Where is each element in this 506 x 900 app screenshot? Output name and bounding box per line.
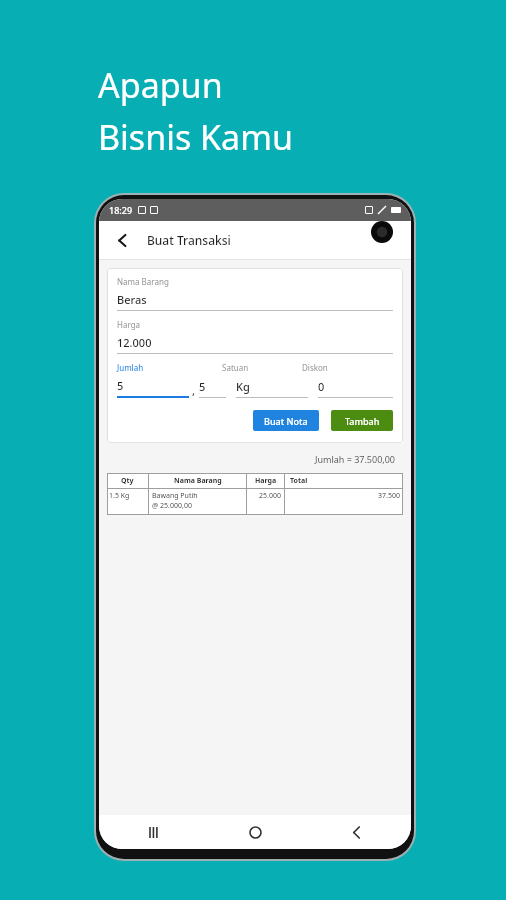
staticText: 25.000	[247, 491, 281, 501]
staticText: Jumlah = 37.500,00	[99, 453, 395, 465]
staticText: 1.5 Kg	[109, 491, 130, 501]
button[interactable]: 0	[318, 379, 393, 398]
staticText: Kg	[236, 379, 250, 394]
staticText: Bisnis Kamu	[98, 114, 293, 160]
staticText: Nama Barang	[117, 276, 169, 287]
staticText: 0	[318, 379, 325, 394]
button[interactable]: Kg	[236, 379, 308, 398]
button[interactable]: 5	[199, 379, 226, 398]
staticText: 12.000	[117, 335, 152, 350]
staticText: Buat Nota	[264, 415, 308, 427]
staticText: Diskon	[302, 362, 328, 373]
staticText: Qty	[121, 476, 134, 486]
button[interactable]: Tambah	[331, 410, 393, 431]
staticText: Nama Barang	[174, 476, 222, 486]
staticText: Tambah	[345, 415, 380, 427]
button[interactable]: Home	[240, 817, 270, 847]
button[interactable]: Back	[107, 225, 137, 255]
staticText: Harga	[255, 476, 277, 486]
button[interactable]: Back	[341, 817, 371, 847]
staticText: Bawang Putih	[152, 491, 198, 501]
staticText: Satuan	[222, 362, 302, 373]
staticText: 5	[117, 378, 124, 393]
staticText: 37.500	[285, 491, 400, 501]
staticText: Apapun	[98, 62, 223, 108]
button[interactable]: Buat Nota	[253, 410, 319, 431]
button[interactable]: Recents	[139, 817, 169, 847]
staticText: Jumlah	[117, 362, 222, 373]
staticText: Total	[290, 476, 308, 486]
staticText: Harga	[117, 319, 141, 330]
button[interactable]: 5	[117, 378, 189, 398]
staticText: ,	[192, 383, 196, 398]
staticText: 5	[199, 379, 206, 394]
staticText: Buat Transaksi	[147, 232, 231, 248]
staticText: 18:29	[109, 204, 133, 216]
staticText: @ 25.000,00	[152, 501, 192, 511]
staticText: Beras	[117, 292, 147, 307]
